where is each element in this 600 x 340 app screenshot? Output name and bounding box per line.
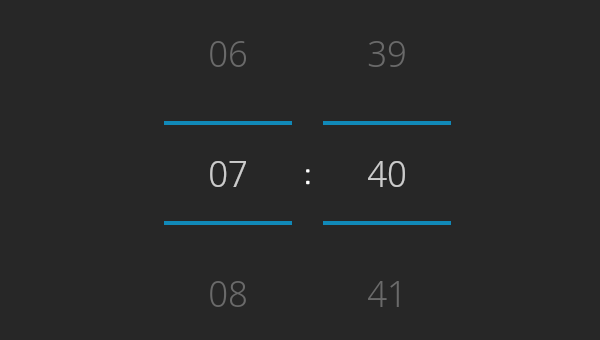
staticText: 07 — [208, 147, 248, 197]
button[interactable]: Next minute 41 — [323, 232, 451, 340]
button[interactable]: Next hour 08 — [164, 232, 292, 340]
other: Hours minutes separator — [300, 160, 320, 192]
button[interactable]: Previous minute 39 — [323, 0, 451, 112]
staticText: 40 — [367, 147, 407, 197]
staticText: 39 — [367, 27, 407, 77]
staticText: 41 — [367, 267, 407, 317]
staticText: 08 — [208, 267, 248, 317]
button[interactable]: Minute 40 selected — [323, 112, 451, 232]
button[interactable]: Previous hour 06 — [164, 0, 292, 112]
staticText: 06 — [208, 27, 248, 77]
button[interactable]: Hour 07 selected — [164, 112, 292, 232]
